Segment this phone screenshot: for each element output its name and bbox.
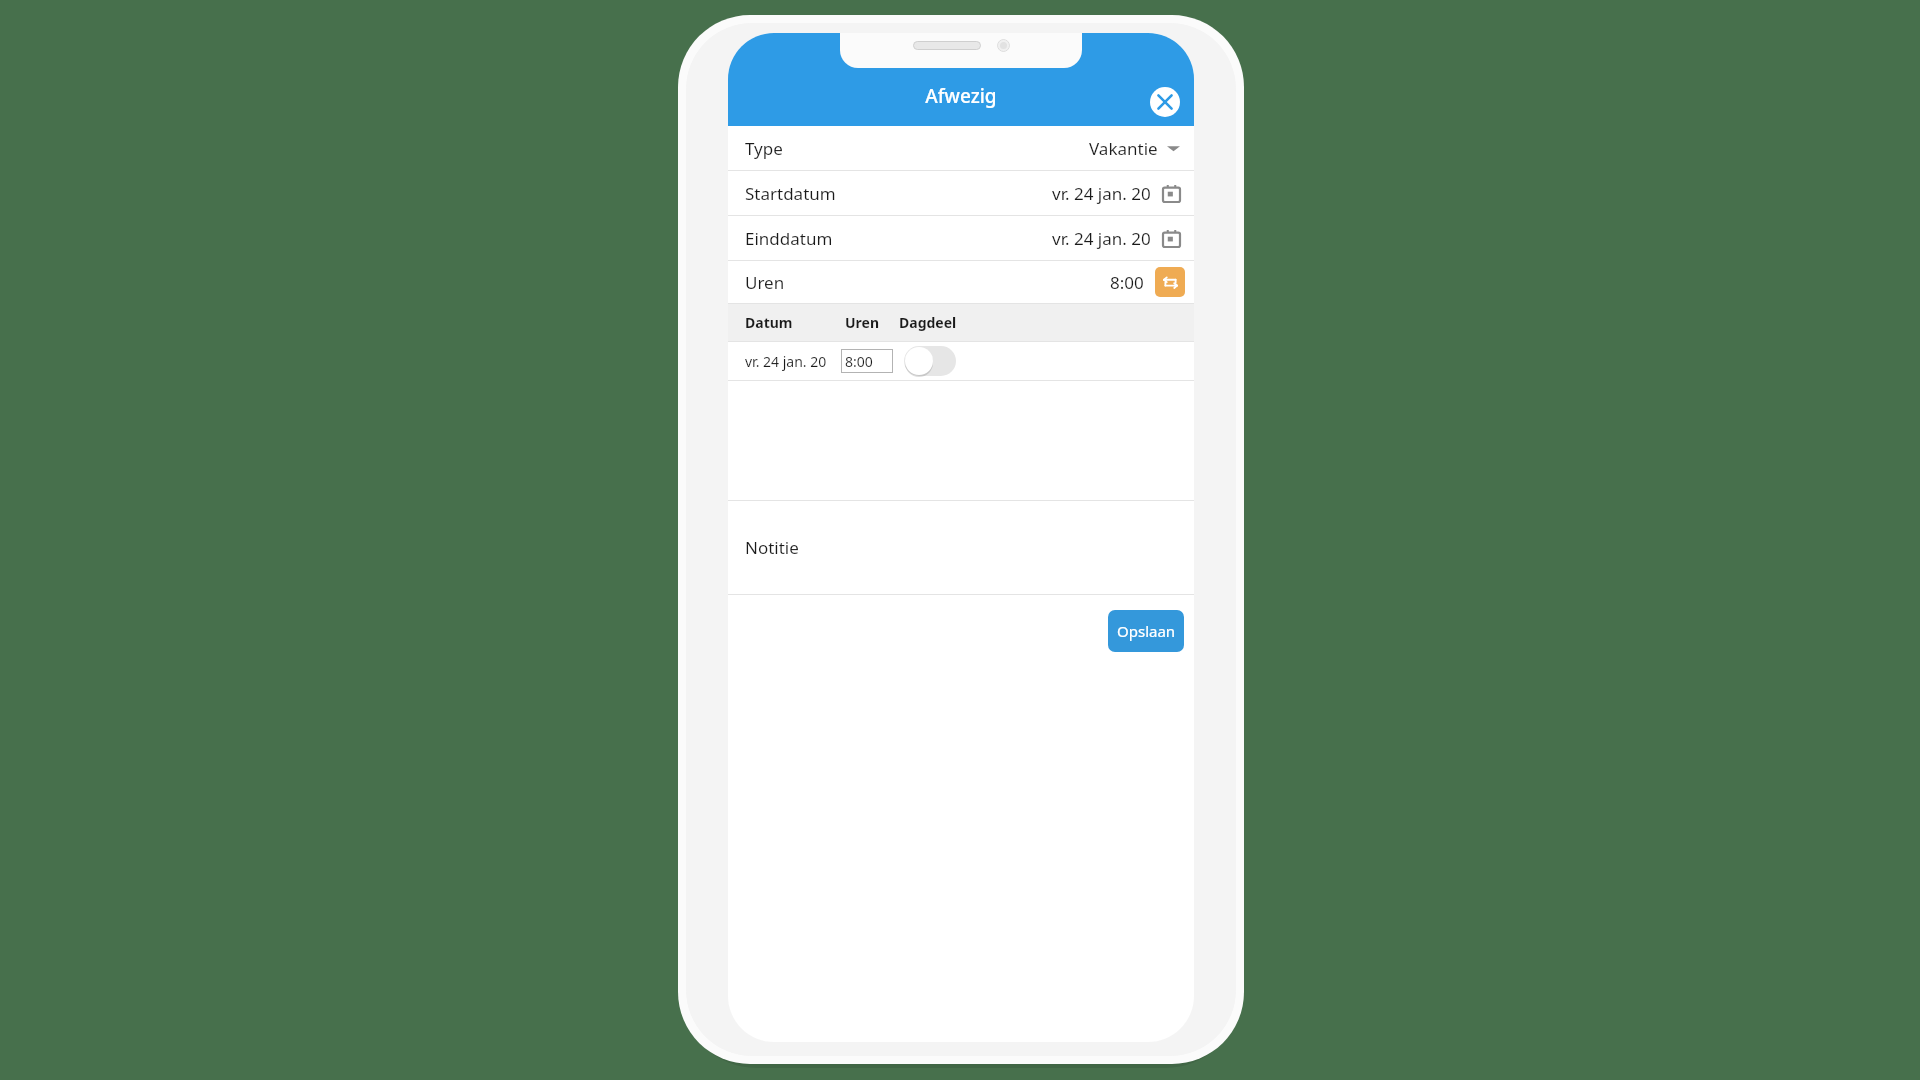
staticText: 8:00 [1110,271,1144,294]
staticText: Einddatum [745,227,833,250]
staticText: Datum [745,313,845,332]
button[interactable]: Dagdeel schakelaar [904,346,956,376]
button[interactable]: Notitie [728,501,1194,594]
button[interactable]: Herberekenen [1155,267,1185,297]
staticText: Vakantie [1089,137,1158,160]
staticText: Opslaan [1117,621,1176,641]
button[interactable]: 8:00 [841,349,893,373]
staticText: Dagdeel [899,313,957,332]
staticText: Afwezig [925,83,997,109]
staticText: Uren [845,313,899,332]
staticText: Notitie [745,536,799,559]
button[interactable]: Opslaan [1108,610,1184,652]
staticText: vr. 24 jan. 20 [745,352,841,371]
button[interactable]: Startdatum [728,171,1194,215]
staticText: 8:00 [845,352,873,371]
staticText: Type [745,137,783,160]
button[interactable]: Sluiten [1150,87,1180,117]
staticText: vr. 24 jan. 20 [1052,227,1151,250]
staticText: Startdatum [745,182,836,205]
button[interactable]: Einddatum [728,216,1194,260]
staticText: vr. 24 jan. 20 [1052,182,1151,205]
staticText: Uren [745,271,785,294]
button[interactable]: Type [728,126,1194,170]
